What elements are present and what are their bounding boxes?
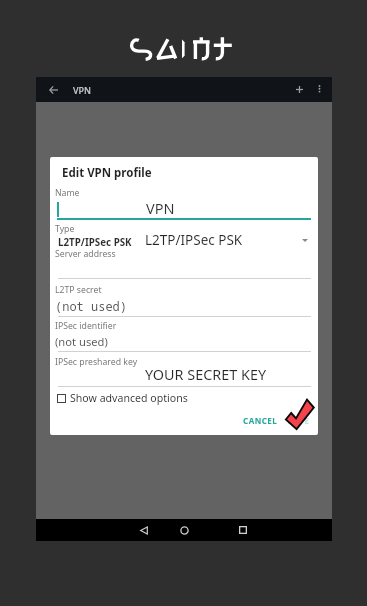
- staticText: Name: [55, 187, 80, 199]
- staticText: IPSec preshared key: [55, 356, 138, 368]
- staticText: L2TP secret: [55, 284, 102, 296]
- button[interactable]: Add VPN profile: [289, 79, 310, 99]
- button[interactable]: Back: [128, 519, 160, 541]
- staticText: L2TP/IPSec PSK: [58, 236, 132, 249]
- staticText: Type: [55, 223, 75, 235]
- button[interactable]: More options: [309, 79, 329, 99]
- button[interactable]: SAVE: [283, 410, 315, 431]
- staticText: Edit VPN profile: [62, 165, 152, 181]
- staticText: L2TP/IPSec PSK: [145, 231, 243, 249]
- staticText: Server address: [55, 248, 116, 260]
- staticText: IPSec identifier: [55, 320, 117, 332]
- staticText: VPN: [73, 84, 92, 96]
- staticText: YOUR SECRET KEY: [145, 365, 267, 385]
- button[interactable]: Show advanced options: [57, 390, 188, 406]
- button[interactable]: Navigate up: [42, 80, 64, 99]
- button[interactable]: CANCEL: [238, 410, 283, 431]
- button[interactable]: Home: [168, 519, 200, 541]
- staticText: VPN: [146, 198, 175, 218]
- staticText: (not used): [55, 298, 128, 314]
- staticText: SAVE: [288, 415, 310, 426]
- staticText: CANCEL: [243, 415, 278, 426]
- staticText: (not used): [55, 334, 108, 349]
- button[interactable]: Recent apps: [227, 519, 259, 541]
- staticText: Show advanced options: [70, 391, 188, 405]
